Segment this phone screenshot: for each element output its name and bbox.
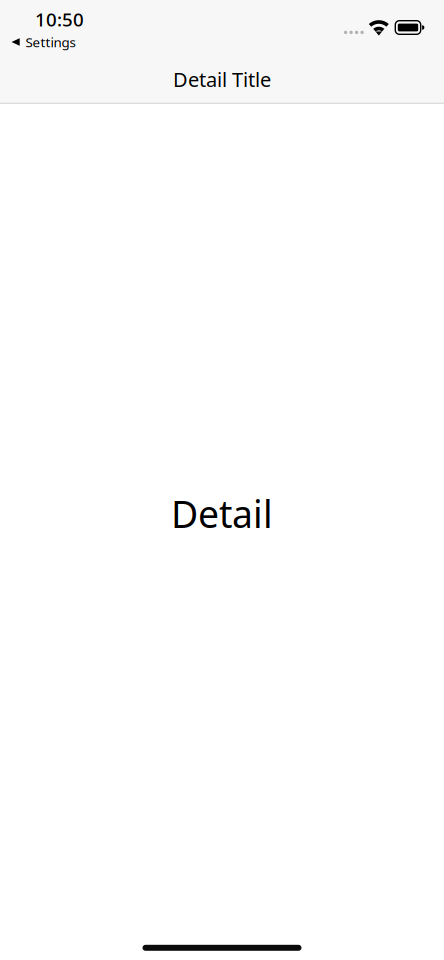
- staticText: 10:50: [35, 7, 84, 32]
- button[interactable]: Settings: [0, 32, 86, 58]
- staticText: Settings: [26, 33, 76, 51]
- staticText: Detail Title: [173, 66, 271, 93]
- staticText: Detail: [171, 489, 273, 538]
